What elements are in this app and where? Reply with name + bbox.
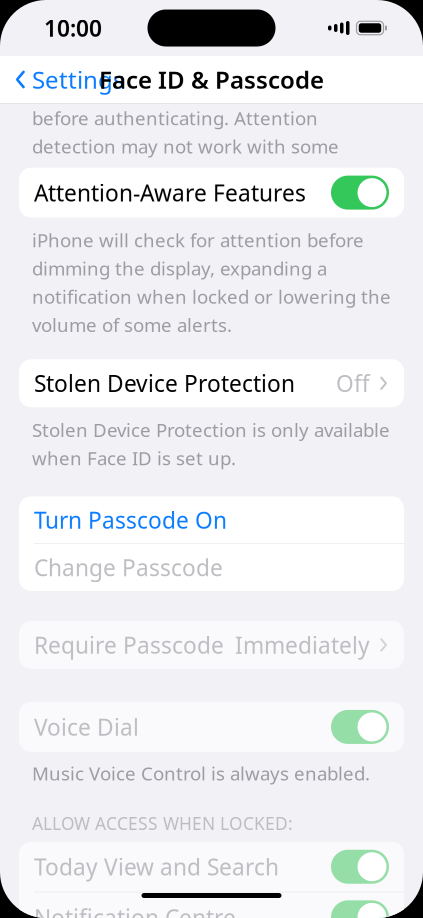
staticText: Turn Passcode On	[34, 505, 227, 535]
button[interactable]: Voice Dial	[19, 702, 404, 752]
staticText: Attention-Aware Features	[34, 177, 306, 208]
staticText: before authenticating. Attention detecti…	[32, 106, 376, 215]
staticText: 10:00	[44, 13, 102, 43]
button[interactable]: Today View and Search	[19, 842, 404, 892]
button[interactable]: Turn Passcode On	[19, 496, 404, 543]
staticText: Stolen Device Protection	[34, 368, 295, 398]
staticText: Change Passcode	[34, 552, 223, 582]
staticText: Notification Centre	[34, 902, 236, 918]
staticText: Require Passcode	[34, 630, 224, 660]
staticText: Stolen Device Protection is only availab…	[32, 417, 390, 470]
staticText: iPhone will check for attention before d…	[32, 228, 391, 337]
button[interactable]: Attention-Aware Features	[19, 168, 404, 218]
staticText: Voice Dial	[34, 712, 139, 742]
button[interactable]: Stolen Device Protection	[19, 359, 404, 407]
staticText: Settings	[32, 64, 124, 95]
staticText: Today View and Search	[34, 852, 279, 882]
button[interactable]: Require Passcode	[19, 621, 404, 669]
staticText: Music Voice Control is always enabled.	[32, 761, 370, 786]
staticText: Immediately	[235, 630, 370, 660]
staticText: Face ID & Passcode	[99, 64, 324, 95]
staticText: ALLOW ACCESS WHEN LOCKED:	[32, 812, 293, 835]
button[interactable]: Settings	[0, 58, 124, 101]
button[interactable]: Notification Centre	[19, 892, 404, 918]
staticText: Off	[336, 368, 370, 398]
button[interactable]: Change Passcode	[19, 544, 404, 591]
